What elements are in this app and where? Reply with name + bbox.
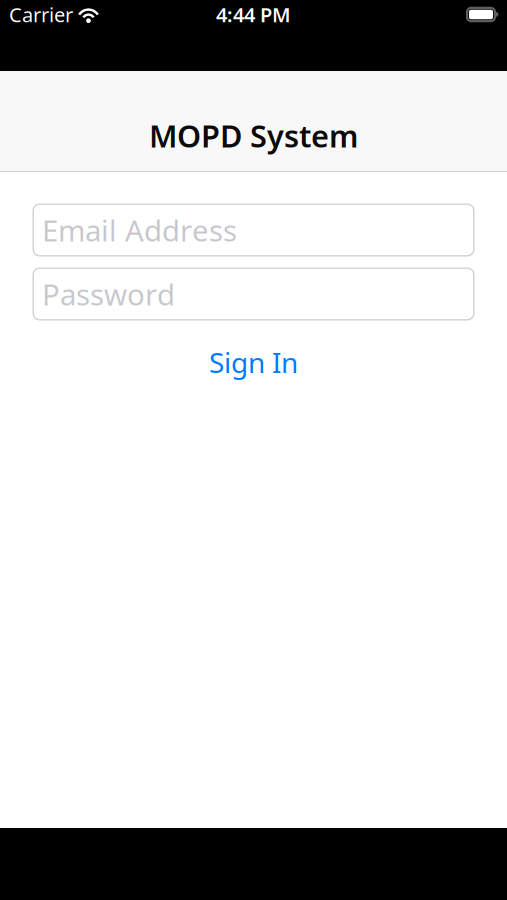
- staticText: MOPD System: [149, 115, 358, 156]
- staticText: 4:44 PM: [216, 1, 291, 28]
- staticText: Password: [42, 274, 175, 313]
- staticText: Sign In: [209, 343, 298, 381]
- staticText: Email Address: [42, 210, 237, 249]
- button[interactable]: Sign In: [209, 343, 298, 381]
- textField[interactable]: Email Address: [32, 203, 474, 256]
- staticText: Carrier: [9, 1, 73, 28]
- secureTextField[interactable]: Password: [32, 267, 474, 320]
